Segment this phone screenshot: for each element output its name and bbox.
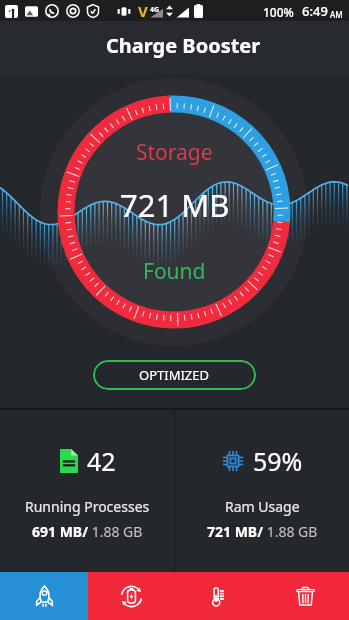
- staticText: Ram Usage: [225, 497, 300, 516]
- button[interactable]: 42: [0, 410, 174, 572]
- staticText: 691 MB/: [32, 522, 88, 541]
- button[interactable]: Battery saver: [88, 572, 175, 620]
- staticText: Storage: [136, 138, 213, 167]
- staticText: 1.88 GB: [88, 522, 143, 541]
- staticText: 42: [87, 444, 116, 478]
- staticText: Charge Booster: [106, 32, 261, 59]
- button[interactable]: 59%: [175, 410, 349, 572]
- button[interactable]: OPTIMIZED: [93, 360, 256, 390]
- button[interactable]: CPU cooler: [175, 572, 262, 620]
- staticText: Found: [143, 257, 206, 286]
- staticText: OPTIMIZED: [139, 366, 210, 384]
- staticText: 6:49: [302, 2, 328, 20]
- button[interactable]: Boost: [0, 572, 88, 620]
- staticText: 100%: [263, 4, 294, 20]
- staticText: 59%: [253, 444, 303, 478]
- staticText: 721 MB: [120, 184, 230, 226]
- staticText: 4G: [150, 5, 160, 15]
- staticText: V: [138, 1, 148, 21]
- button[interactable]: Junk clean: [262, 572, 349, 620]
- staticText: AM: [330, 9, 343, 20]
- staticText: Running Processes: [25, 497, 150, 516]
- staticText: 1.88 GB: [263, 522, 318, 541]
- staticText: 721 MB/: [207, 522, 263, 541]
